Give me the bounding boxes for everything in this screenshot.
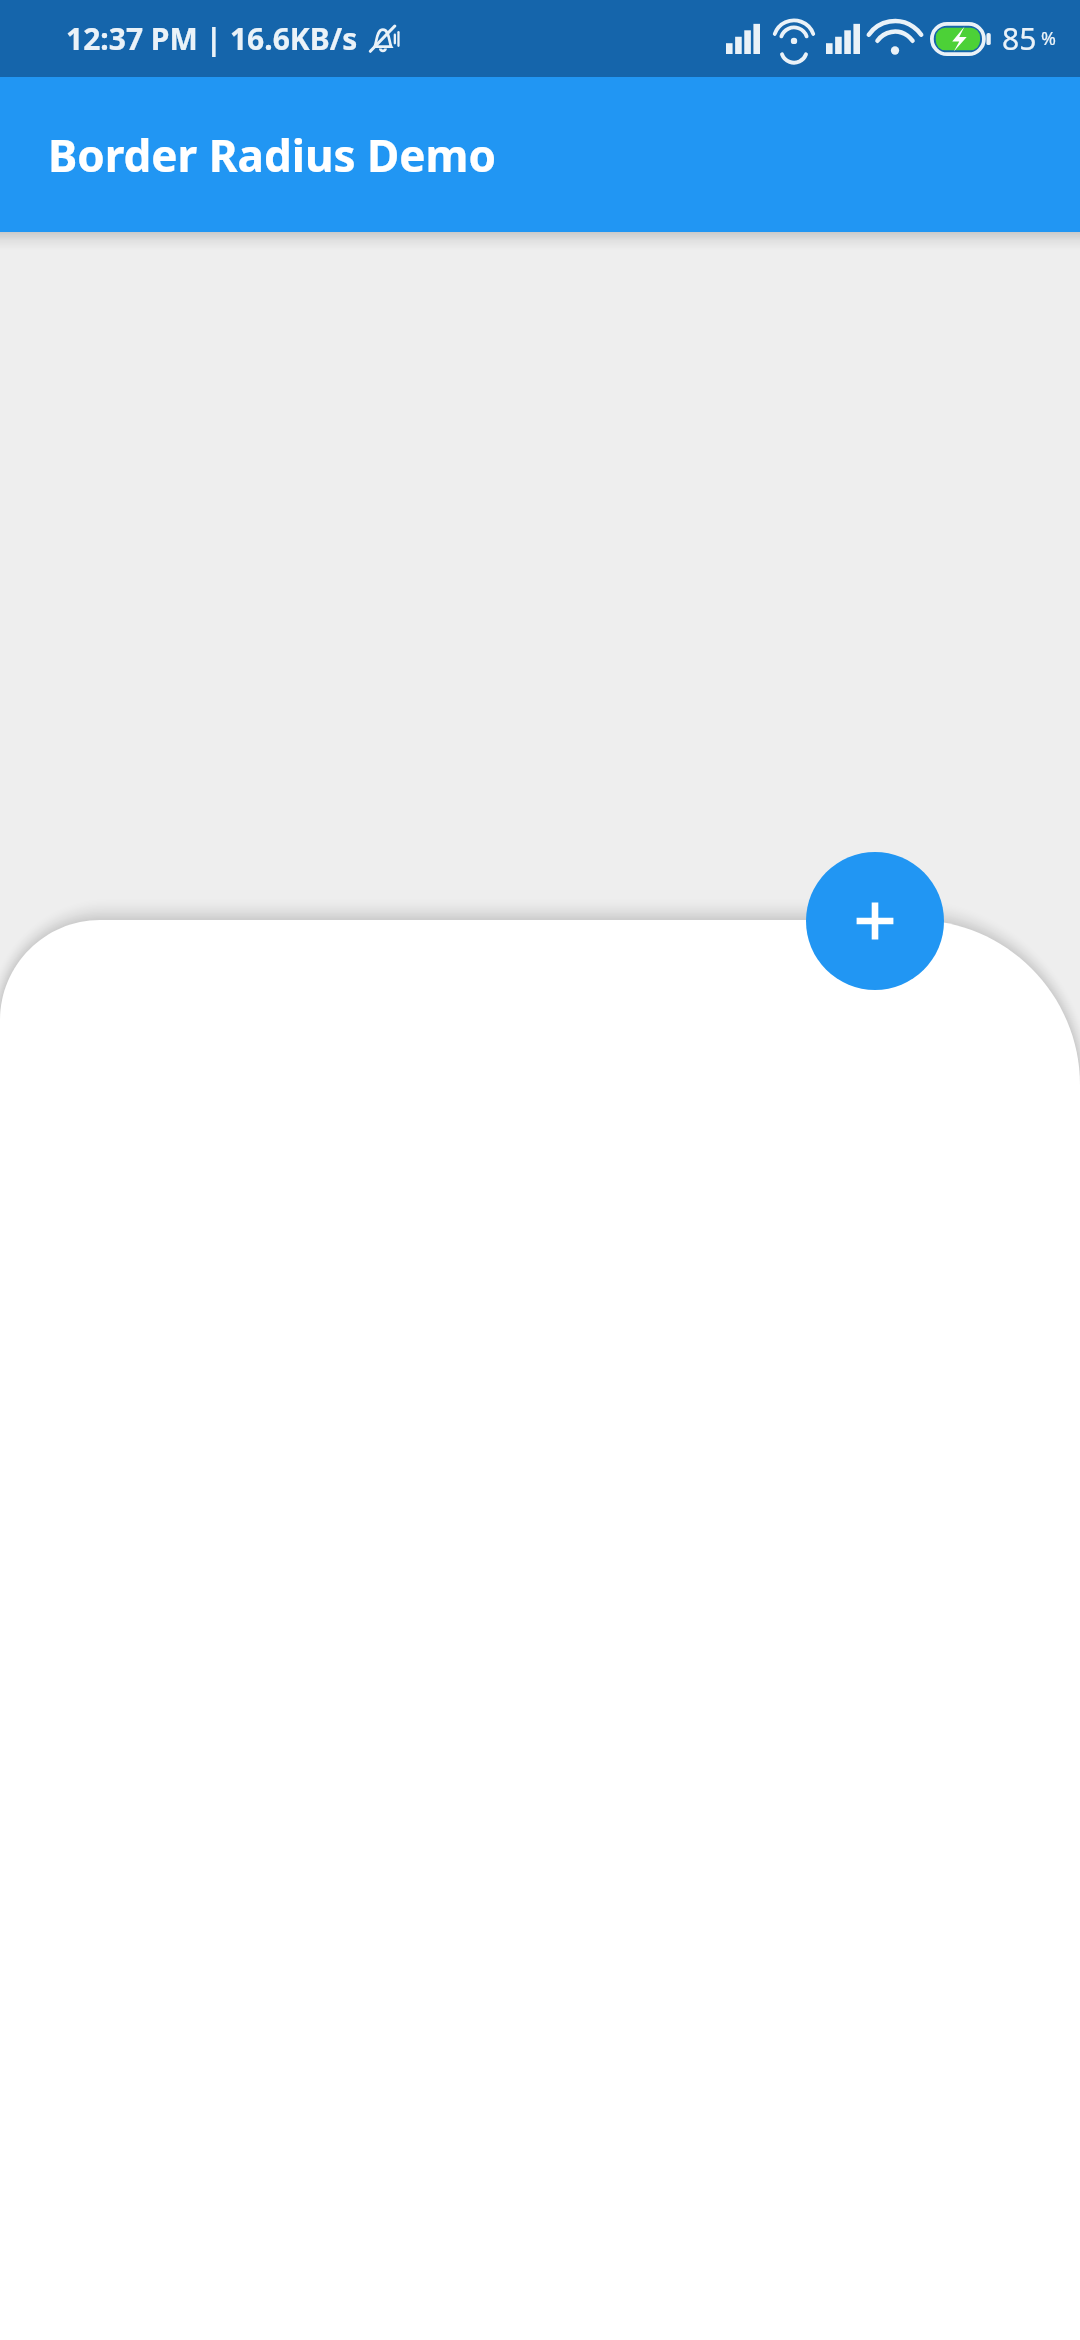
staticText: %: [1041, 26, 1056, 51]
button[interactable]: Add: [806, 852, 944, 990]
staticText: Border Radius Demo: [48, 125, 496, 185]
staticText: 12:37 PM | 16.6KB/s: [66, 18, 358, 59]
staticText: 85: [1002, 18, 1037, 59]
